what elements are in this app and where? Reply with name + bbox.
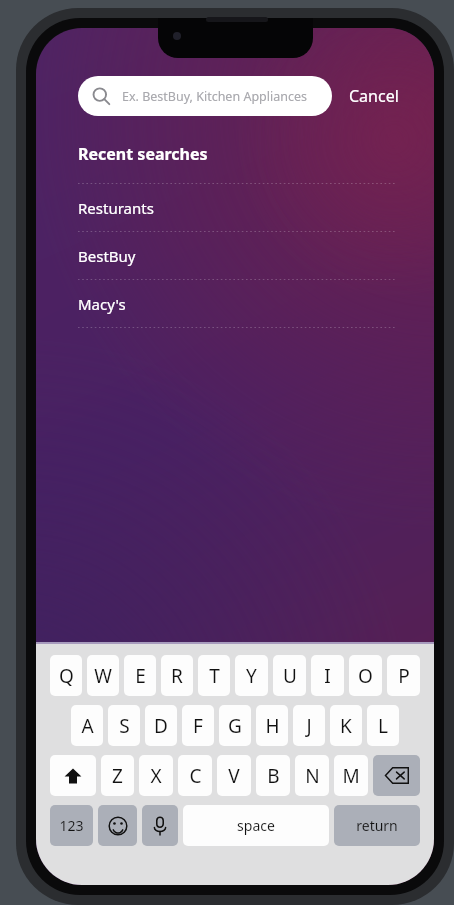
staticText: V bbox=[228, 763, 240, 789]
button[interactable]: E bbox=[124, 655, 156, 696]
staticText: G bbox=[228, 713, 242, 739]
staticText: Ex. BestBuy, Kitchen Appliances bbox=[122, 88, 307, 105]
staticText: O bbox=[358, 663, 373, 689]
staticText: Macy's bbox=[78, 294, 126, 314]
staticText: J bbox=[306, 713, 312, 739]
staticText: E bbox=[135, 663, 146, 689]
button[interactable]: P bbox=[387, 655, 420, 696]
staticText: A bbox=[81, 713, 94, 739]
button[interactable]: R bbox=[161, 655, 193, 696]
button[interactable]: L bbox=[367, 705, 399, 746]
staticText: F bbox=[193, 713, 203, 739]
button[interactable]: space bbox=[183, 805, 329, 846]
button[interactable]: O bbox=[349, 655, 382, 696]
button[interactable]: F bbox=[182, 705, 214, 746]
staticText: C bbox=[189, 763, 202, 789]
button[interactable]: S bbox=[108, 705, 140, 746]
button[interactable]: Y bbox=[235, 655, 268, 696]
staticText: T bbox=[209, 663, 220, 689]
staticText: Resturants bbox=[78, 198, 154, 218]
button[interactable]: A bbox=[71, 705, 103, 746]
button[interactable]: Q bbox=[50, 655, 82, 696]
staticText: R bbox=[171, 663, 183, 689]
button[interactable]: I bbox=[311, 655, 344, 696]
staticText: M bbox=[342, 763, 360, 789]
button[interactable]: Backspace bbox=[373, 755, 420, 796]
button[interactable]: H bbox=[256, 705, 288, 746]
button[interactable]: N bbox=[295, 755, 329, 796]
button[interactable]: G bbox=[219, 705, 251, 746]
button[interactable]: B bbox=[256, 755, 290, 796]
staticText: H bbox=[265, 713, 280, 739]
staticText: X bbox=[150, 763, 162, 789]
staticText: space bbox=[237, 816, 275, 835]
button[interactable]: Macy's bbox=[36, 280, 434, 327]
staticText: Z bbox=[112, 763, 123, 789]
staticText: Q bbox=[59, 663, 74, 689]
staticText: 123 bbox=[59, 816, 84, 835]
staticText: Cancel bbox=[349, 85, 399, 107]
button[interactable]: W bbox=[87, 655, 119, 696]
button[interactable]: U bbox=[273, 655, 306, 696]
button[interactable]: T bbox=[198, 655, 230, 696]
staticText: Recent searches bbox=[78, 143, 208, 165]
staticText: K bbox=[340, 713, 352, 739]
button[interactable]: V bbox=[217, 755, 251, 796]
staticText: W bbox=[94, 663, 112, 689]
staticText: I bbox=[324, 663, 331, 689]
staticText: N bbox=[305, 763, 320, 789]
staticText: return bbox=[356, 816, 398, 835]
button[interactable]: return bbox=[334, 805, 420, 846]
staticText: L bbox=[378, 713, 388, 739]
button[interactable]: BestBuy bbox=[36, 232, 434, 279]
button[interactable]: Emoji bbox=[98, 805, 137, 846]
staticText: P bbox=[398, 663, 410, 689]
staticText: Y bbox=[246, 663, 257, 689]
staticText: BestBuy bbox=[78, 246, 136, 266]
button[interactable]: D bbox=[145, 705, 177, 746]
staticText: B bbox=[267, 763, 280, 789]
button[interactable]: K bbox=[330, 705, 362, 746]
button[interactable]: Resturants bbox=[36, 184, 434, 231]
button[interactable]: 123 bbox=[50, 805, 93, 846]
button[interactable]: M bbox=[334, 755, 368, 796]
button[interactable]: X bbox=[139, 755, 173, 796]
button[interactable]: Shift bbox=[50, 755, 96, 796]
button[interactable]: Ex. BestBuy, Kitchen Appliances bbox=[78, 76, 332, 116]
staticText: S bbox=[119, 713, 130, 739]
staticText: D bbox=[154, 713, 168, 739]
staticText: U bbox=[283, 663, 297, 689]
button[interactable]: Z bbox=[101, 755, 134, 796]
button[interactable]: Cancel bbox=[345, 79, 403, 113]
button[interactable]: Dictation bbox=[142, 805, 178, 846]
button[interactable]: C bbox=[178, 755, 212, 796]
button[interactable]: J bbox=[293, 705, 325, 746]
